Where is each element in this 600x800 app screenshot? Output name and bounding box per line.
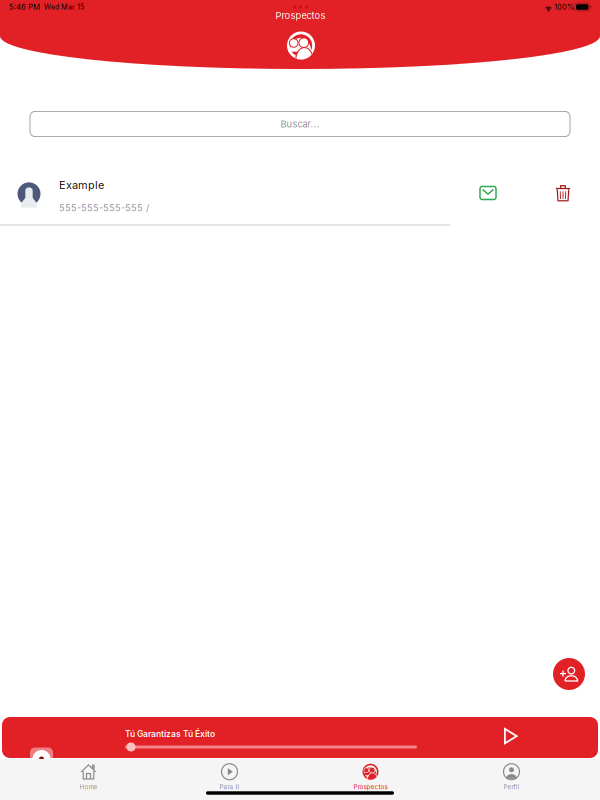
- staticText: Prospectos: [275, 10, 325, 21]
- button[interactable]: Email: [472, 177, 504, 209]
- staticText: Buscar...: [280, 118, 319, 130]
- button[interactable]: Add prospect: [552, 657, 586, 691]
- button[interactable]: Play: [494, 719, 528, 753]
- button[interactable]: Delete: [547, 177, 579, 209]
- staticText: 100%: [554, 2, 574, 11]
- staticText: Para ti: [219, 783, 239, 791]
- staticText: Perfil: [503, 783, 519, 791]
- staticText: 555-555-555-555 /: [59, 202, 149, 213]
- button[interactable]: Para ti: [159, 759, 300, 794]
- staticText: 5:46 PM: [9, 2, 40, 12]
- staticText: Tú Garantizas Tú Éxito: [125, 729, 215, 739]
- button[interactable]: Home: [18, 759, 159, 794]
- button[interactable]: Prospectos: [300, 759, 441, 794]
- staticText: Home: [79, 783, 97, 791]
- button[interactable]: Perfil: [441, 759, 582, 794]
- staticText: Wed Mar 15: [44, 3, 84, 11]
- staticText: Example: [59, 178, 104, 192]
- staticText: Prospectos: [353, 783, 387, 791]
